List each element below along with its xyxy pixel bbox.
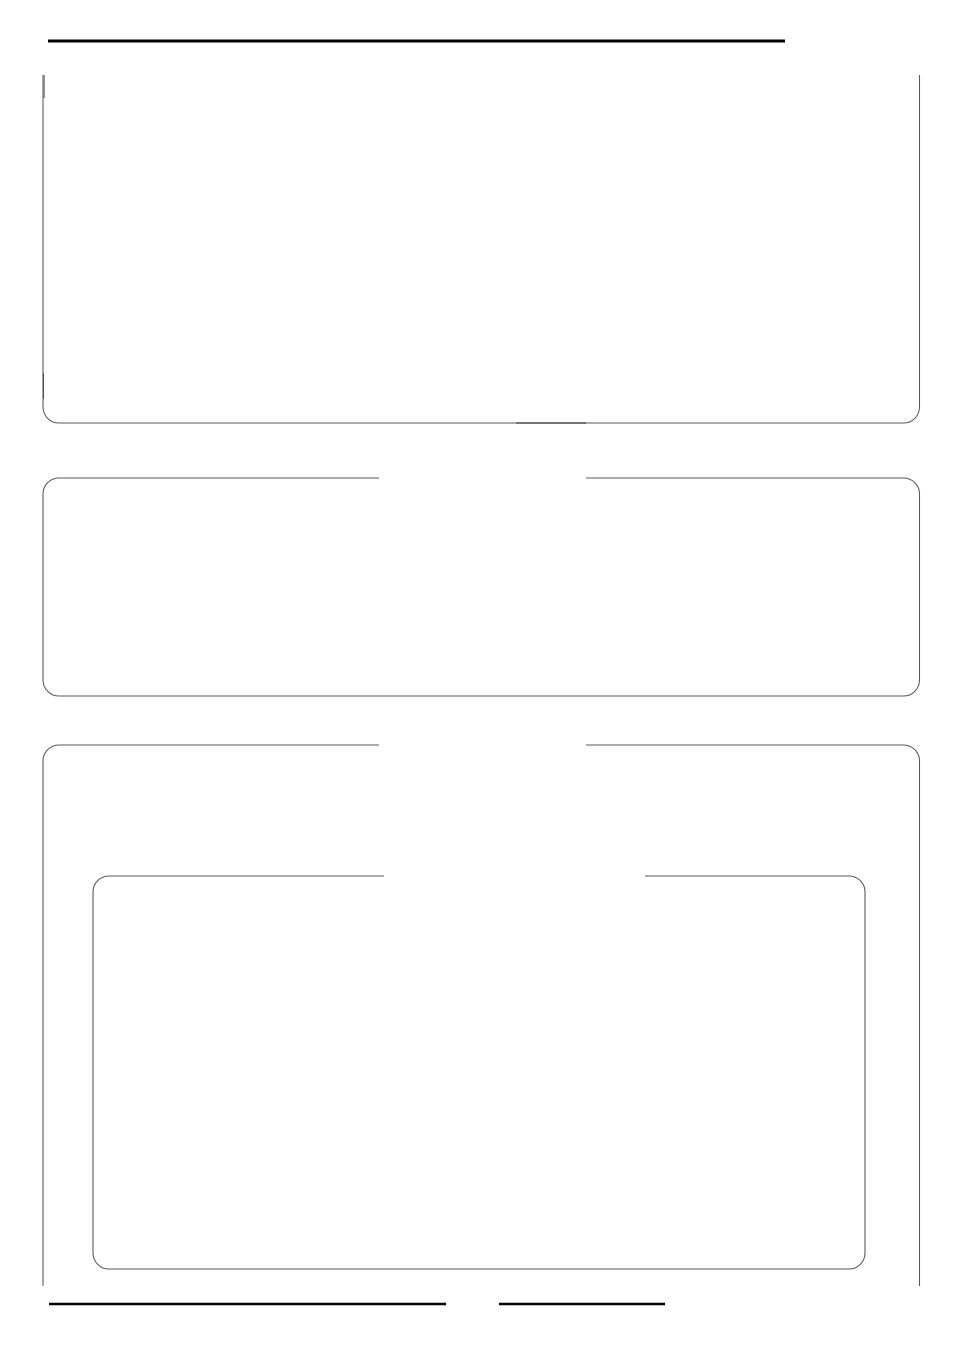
button[interactable]: Secondary action — [499, 1286, 665, 1351]
button[interactable]: Description field — [43, 75, 920, 423]
button[interactable]: Screen title — [0, 0, 954, 75]
button[interactable]: Grouped field — [43, 745, 920, 1286]
button[interactable]: Detail field — [43, 478, 920, 696]
button[interactable]: Primary action — [48, 1286, 448, 1351]
